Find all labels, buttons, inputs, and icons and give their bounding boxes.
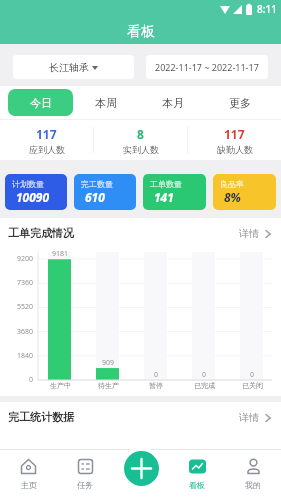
button[interactable]: 完工数量 bbox=[74, 174, 136, 210]
staticText: 生产中 bbox=[50, 381, 71, 390]
staticText: 本周 bbox=[95, 96, 117, 110]
button[interactable]: 看板 bbox=[169, 450, 225, 500]
staticText: 缺勤人数 bbox=[217, 144, 253, 155]
staticText: 10090 bbox=[16, 189, 50, 205]
button[interactable]: 主页 bbox=[0, 450, 57, 500]
button[interactable]: 任务 bbox=[57, 450, 113, 500]
staticText: 7360 bbox=[17, 278, 34, 288]
button[interactable]: 8 bbox=[94, 126, 187, 155]
staticText: 5520 bbox=[17, 302, 34, 312]
button[interactable]: 今日 bbox=[8, 89, 73, 116]
staticText: 看板 bbox=[189, 480, 205, 490]
staticText: 909 bbox=[102, 358, 115, 368]
button[interactable]: 我的 bbox=[225, 450, 281, 500]
staticText: 工单数量 bbox=[150, 179, 182, 189]
staticText: 0 bbox=[154, 370, 159, 380]
button[interactable]: 2022-11-17 ~ 2022-11-17 bbox=[146, 55, 268, 79]
button[interactable]: 更多 bbox=[206, 86, 273, 119]
button[interactable]: 本月 bbox=[139, 86, 206, 119]
staticText: 今日 bbox=[30, 96, 52, 110]
staticText: 本月 bbox=[162, 96, 184, 110]
button[interactable]: 详情 bbox=[239, 411, 273, 424]
staticText: 良品率 bbox=[220, 179, 244, 189]
staticText: 完工数量 bbox=[81, 179, 113, 189]
staticText: 看板 bbox=[127, 23, 155, 41]
staticText: 详情 bbox=[239, 411, 259, 424]
button[interactable]: 良品率 bbox=[213, 174, 276, 210]
staticText: 暂停 bbox=[149, 381, 163, 390]
staticText: 1840 bbox=[17, 351, 34, 361]
staticText: 0 bbox=[202, 370, 207, 380]
staticText: 8:11 bbox=[257, 2, 277, 16]
staticText: 8% bbox=[224, 189, 241, 205]
staticText: 待生产 bbox=[98, 381, 119, 390]
staticText: 117 bbox=[36, 126, 57, 142]
staticText: 9181 bbox=[52, 249, 69, 259]
staticText: 更多 bbox=[229, 96, 251, 110]
staticText: 0 bbox=[250, 370, 255, 380]
button[interactable]: 工单数量 bbox=[143, 174, 206, 210]
staticText: 8 bbox=[137, 126, 144, 142]
staticText: 任务 bbox=[77, 480, 93, 490]
button[interactable]: 计划数量 bbox=[5, 174, 67, 210]
staticText: 已关闭 bbox=[242, 381, 263, 390]
button[interactable]: 117 bbox=[188, 126, 281, 155]
staticText: 117 bbox=[224, 126, 245, 142]
staticText: 应到人数 bbox=[29, 144, 65, 155]
staticText: 141 bbox=[154, 189, 174, 205]
staticText: 完工统计数据 bbox=[8, 410, 74, 424]
staticText: 计划数量 bbox=[12, 179, 44, 189]
staticText: 主页 bbox=[21, 480, 37, 490]
staticText: 长江轴承 bbox=[49, 61, 89, 74]
button[interactable]: 详情 bbox=[239, 227, 273, 240]
button[interactable] bbox=[124, 451, 159, 486]
button[interactable]: 长江轴承 bbox=[13, 55, 134, 79]
staticText: 工单完成情况 bbox=[8, 226, 74, 240]
staticText: 2022-11-17 ~ 2022-11-17 bbox=[155, 61, 259, 73]
button[interactable]: 本周 bbox=[73, 86, 139, 119]
button[interactable]: 117 bbox=[0, 126, 93, 155]
staticText: 610 bbox=[85, 189, 105, 205]
staticText: 0 bbox=[29, 375, 34, 385]
staticText: 详情 bbox=[239, 227, 259, 240]
staticText: 3680 bbox=[17, 327, 34, 337]
staticText: 我的 bbox=[245, 480, 261, 490]
staticText: 实到人数 bbox=[123, 144, 159, 155]
staticText: 已完成 bbox=[194, 381, 215, 390]
staticText: 9200 bbox=[17, 254, 34, 264]
